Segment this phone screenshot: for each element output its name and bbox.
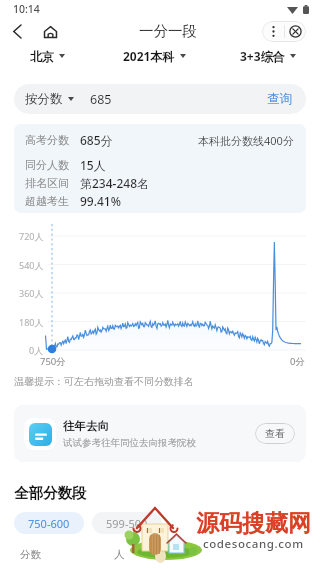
button[interactable]: 599-500 (92, 512, 162, 534)
button[interactable]: 750-600 (14, 512, 84, 534)
staticText: 本科批分数线400分 (198, 133, 294, 148)
staticText: 15人 (80, 157, 106, 173)
button[interactable]: Close (285, 21, 306, 42)
staticText: 540人 (19, 259, 44, 271)
staticText: 685分 (80, 132, 113, 148)
staticText: 查询 (267, 91, 292, 107)
staticText: 0人 (29, 344, 44, 356)
staticText: 685 (90, 91, 112, 108)
staticText: 按分数 (25, 91, 63, 107)
button[interactable]: 北京 (0, 44, 94, 68)
button[interactable]: 查看 (255, 423, 295, 444)
staticText: 高考分数 (25, 133, 69, 147)
button[interactable]: 往年去向 (14, 405, 306, 462)
staticText: 往年去向 (63, 419, 109, 433)
staticText: 试试参考往年同位去向报考院校 (63, 437, 196, 449)
staticText: 2021本科 (123, 48, 175, 64)
staticText: 一分一段 (139, 22, 197, 40)
staticText: 第234-248名 (80, 175, 150, 191)
staticText: 10:14 (13, 2, 40, 16)
staticText: 3+3综合 (240, 48, 285, 64)
staticText: 源码搜藏网 (196, 509, 311, 538)
staticText: 720人 (19, 230, 44, 242)
staticText: 360人 (19, 287, 44, 299)
button[interactable]: 按分数 (25, 91, 74, 107)
staticText: 599-500 (106, 516, 148, 531)
staticText: 全部分数段 (14, 484, 87, 502)
staticText: 人 (114, 548, 125, 561)
button[interactable]: 3+3综合 (215, 44, 320, 68)
staticText: 180人 (19, 316, 44, 328)
staticText: 分数 (20, 548, 41, 561)
staticText: 750分 (40, 355, 66, 368)
staticText: 温馨提示：可左右拖动查看不同分数排名 (14, 375, 194, 388)
staticText: 超越考生 (25, 194, 69, 208)
staticText: 同分人数 (25, 158, 69, 172)
button[interactable]: Back (5, 20, 28, 43)
staticText: 0分 (290, 355, 305, 368)
staticText: codesocang.com (203, 536, 304, 552)
staticText: 北京 (30, 49, 54, 64)
button[interactable]: 2021本科 (94, 44, 215, 68)
staticText: 99.41% (80, 193, 121, 209)
button[interactable]: More options (262, 21, 284, 42)
staticText: 查看 (265, 427, 285, 440)
staticText: 750-600 (28, 516, 70, 531)
button[interactable]: Home (39, 20, 62, 43)
button[interactable]: 查询 (267, 91, 292, 107)
staticText: 排名区间 (25, 176, 69, 190)
